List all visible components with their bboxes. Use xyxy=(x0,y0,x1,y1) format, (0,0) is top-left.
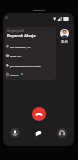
button[interactable]: End call xyxy=(32,107,46,121)
button[interactable]: Messages xyxy=(33,128,43,138)
staticText: 75.62% xyxy=(10,73,19,76)
button[interactable]: Mute xyxy=(10,128,20,138)
staticText: Reyansh Ahuja xyxy=(7,33,36,38)
staticText: Ongoing call xyxy=(7,29,24,33)
staticText: 00:56 xyxy=(61,40,68,44)
button[interactable]: Audio output xyxy=(57,128,67,138)
staticText: Job Retargeting/Campaign xyxy=(10,64,42,67)
staticText: San Francisco, CA xyxy=(10,45,31,48)
button[interactable]: Ongoing call xyxy=(5,27,56,80)
staticText: Zyker Inc. xyxy=(10,54,22,57)
